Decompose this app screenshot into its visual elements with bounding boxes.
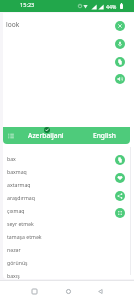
button[interactable]: bax bbox=[0, 152, 134, 165]
button[interactable]: Clear bbox=[115, 21, 125, 31]
staticText: 15:23 bbox=[20, 1, 35, 9]
button[interactable]: English bbox=[80, 127, 129, 144]
button[interactable]: Copy text bbox=[115, 57, 125, 67]
button[interactable]: look bbox=[3, 13, 130, 32]
button[interactable]: Recents bbox=[24, 281, 44, 300]
staticText: baxış bbox=[7, 272, 20, 279]
button[interactable]: Share bbox=[115, 191, 125, 201]
button[interactable]: görünüş bbox=[0, 256, 134, 269]
button[interactable]: Menu bbox=[3, 129, 17, 142]
button[interactable]: çıxmaq bbox=[0, 204, 134, 217]
staticText: look bbox=[6, 20, 20, 29]
staticText: English bbox=[93, 131, 116, 140]
button[interactable]: Azerbaijani bbox=[21, 127, 70, 144]
staticText: çıxmaq bbox=[7, 207, 25, 214]
button[interactable]: More bbox=[115, 208, 125, 218]
button[interactable]: araşdırmaq bbox=[0, 191, 134, 204]
staticText: baxmaq bbox=[7, 168, 27, 175]
button[interactable]: Home bbox=[58, 281, 78, 300]
button[interactable]: axtarmaq bbox=[0, 178, 134, 191]
staticText: nəzər bbox=[7, 246, 21, 253]
staticText: 44% bbox=[106, 3, 117, 10]
button[interactable]: Favorite bbox=[115, 173, 125, 183]
button[interactable]: tamaşa etmək bbox=[0, 230, 134, 243]
button[interactable]: Copy bbox=[115, 155, 125, 165]
staticText: axtarmaq bbox=[7, 181, 31, 188]
button[interactable]: nəzər bbox=[0, 243, 134, 256]
button[interactable]: baxış bbox=[0, 269, 134, 282]
button[interactable]: baxmaq bbox=[0, 165, 134, 178]
button[interactable]: Microphone bbox=[115, 39, 125, 49]
staticText: araşdırmaq bbox=[7, 194, 35, 201]
staticText: bax bbox=[7, 155, 16, 162]
button[interactable]: Speak bbox=[115, 74, 125, 84]
button[interactable]: Back bbox=[90, 281, 110, 300]
staticText: Azerbaijani bbox=[28, 131, 64, 140]
staticText: görünüş bbox=[7, 259, 28, 266]
button[interactable]: seyr etmək bbox=[0, 217, 134, 230]
staticText: tamaşa etmək bbox=[7, 233, 42, 240]
staticText: seyr etmək bbox=[7, 220, 34, 227]
